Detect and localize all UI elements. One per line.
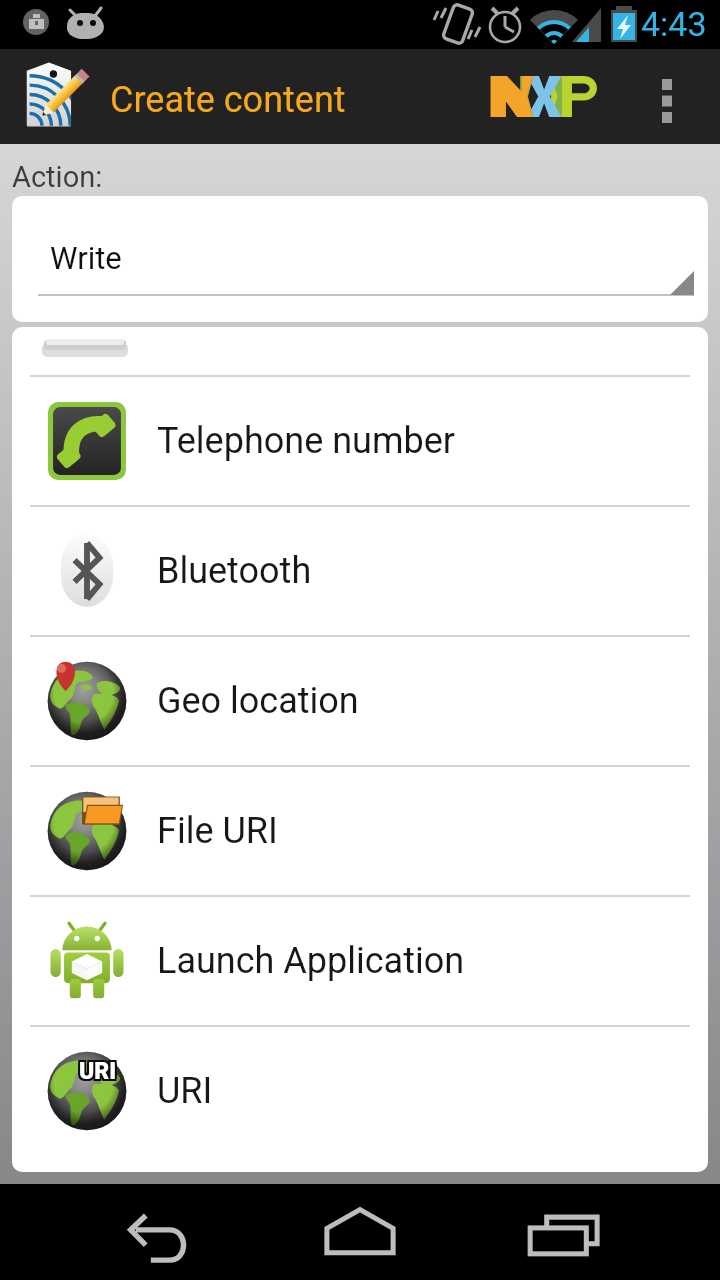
button[interactable]: URI	[12, 1027, 708, 1155]
button[interactable]: NXP	[490, 76, 600, 117]
staticText: Bluetooth	[157, 550, 312, 592]
button[interactable]: Back	[0, 1184, 240, 1280]
staticText: Telephone number	[157, 420, 455, 462]
staticText: URI	[79, 1058, 117, 1085]
staticText: URI	[77, 1060, 115, 1087]
staticText: URI	[81, 1060, 119, 1087]
staticText: URI	[79, 1058, 117, 1085]
staticText: URI	[77, 1056, 115, 1083]
staticText: File URI	[157, 810, 278, 852]
button[interactable]: Write	[12, 196, 708, 322]
staticText: Create content	[110, 79, 346, 121]
button[interactable]: Bluetooth	[12, 507, 708, 635]
staticText: URI	[79, 1056, 117, 1083]
button[interactable]: More options	[636, 49, 698, 144]
staticText: Launch Application	[157, 940, 465, 982]
button[interactable]: Home	[240, 1184, 480, 1280]
button[interactable]: Text record	[12, 327, 708, 375]
button[interactable]: Telephone number	[12, 377, 708, 505]
staticText: URI	[79, 1060, 117, 1087]
button[interactable]: Launch Application	[12, 897, 708, 1025]
staticText: URI	[77, 1058, 115, 1085]
staticText: URI	[81, 1058, 119, 1085]
staticText: URI	[81, 1056, 119, 1083]
staticText: 4:43	[641, 4, 707, 44]
staticText: URI	[157, 1070, 213, 1112]
staticText: Action:	[12, 160, 103, 194]
button[interactable]: Geo location	[12, 637, 708, 765]
staticText: Geo location	[157, 680, 359, 722]
staticText: Write	[50, 240, 122, 276]
button[interactable]: Recent apps	[480, 1184, 720, 1280]
button[interactable]: File URI	[12, 767, 708, 895]
